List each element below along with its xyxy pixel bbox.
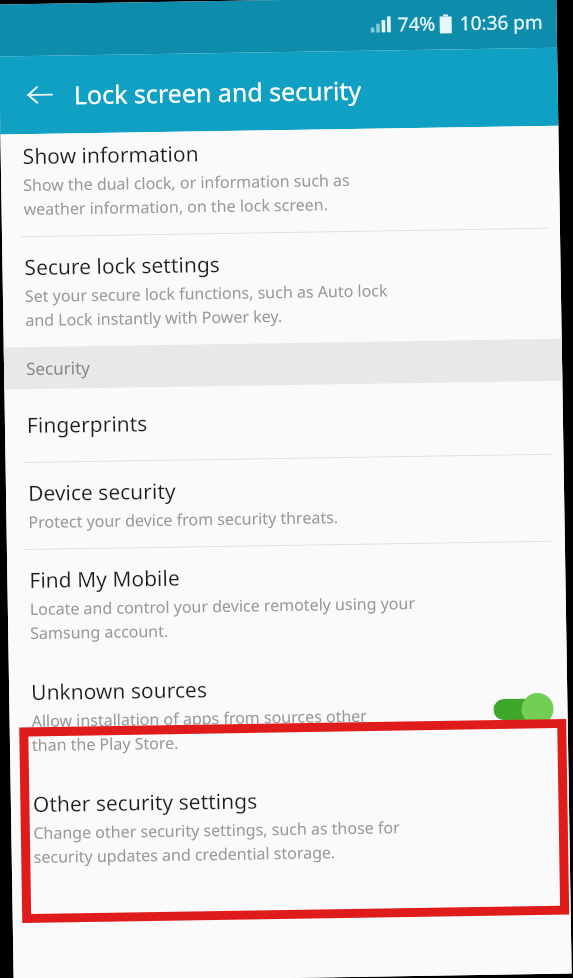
button[interactable]: Fingerprints: [4, 381, 563, 463]
staticText: Show the dual clock, or information such…: [23, 169, 351, 220]
staticText: Lock screen and security: [73, 73, 362, 111]
button[interactable]: Unknown sources toggle, on: [493, 692, 554, 727]
button[interactable]: Find My Mobile: [7, 542, 567, 660]
staticText: Allow installation of apps from sources …: [31, 705, 368, 756]
staticText: Find My Mobile: [29, 564, 181, 595]
staticText: Security: [26, 356, 90, 380]
staticText: Unknown sources: [31, 675, 207, 707]
staticText: Fingerprints: [27, 409, 148, 440]
button[interactable]: Show information: [0, 126, 560, 237]
staticText: Other security settings: [33, 786, 258, 819]
staticText: 10:36 pm: [459, 9, 543, 36]
staticText: Show information: [22, 139, 199, 171]
staticText: Locate and control your device remotely …: [30, 592, 416, 644]
staticText: 74%: [397, 11, 436, 37]
staticText: Protect your device from security threat…: [28, 506, 339, 533]
button[interactable]: Other security settings: [10, 766, 570, 884]
staticText: Secure lock settings: [24, 250, 221, 282]
button[interactable]: Unknown sources: [9, 652, 568, 774]
button[interactable]: Navigate up: [17, 72, 62, 117]
staticText: Set your secure lock functions, such as …: [25, 279, 388, 331]
button[interactable]: Device security: [6, 455, 565, 550]
staticText: Change other security settings, such as …: [33, 816, 401, 868]
button[interactable]: Secure lock settings: [2, 229, 562, 347]
staticText: Device security: [28, 477, 176, 508]
